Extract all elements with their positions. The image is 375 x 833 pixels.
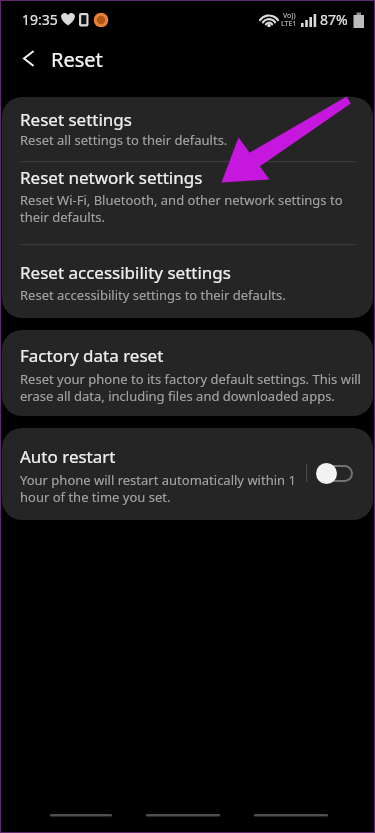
staticText: Reset all settings to their defaults.	[20, 131, 228, 149]
button[interactable]	[2, 97, 373, 161]
staticText: 87%	[320, 10, 348, 29]
staticText: Your phone will restart automatically wi…	[20, 471, 296, 506]
staticText: Reset network settings	[20, 166, 203, 189]
staticText: Reset settings	[20, 108, 132, 131]
button[interactable]: Factory data reset	[2, 330, 373, 416]
staticText: LTE1	[281, 19, 297, 29]
button[interactable]	[2, 244, 373, 318]
button[interactable]	[310, 458, 365, 500]
button[interactable]	[12, 44, 48, 74]
staticText: Reset accessibility settings	[20, 261, 231, 284]
staticText: Reset	[51, 46, 103, 73]
staticText: Reset Wi-Fi, Bluetooth, and other networ…	[20, 191, 343, 226]
staticText: Auto restart	[20, 445, 116, 468]
button[interactable]	[2, 161, 373, 244]
staticText: 19:35	[22, 10, 58, 29]
button[interactable]: Auto restart	[2, 428, 373, 520]
staticText: Vo))	[283, 11, 296, 21]
staticText: Reset your phone to its factory default …	[20, 370, 361, 405]
staticText: Factory data reset	[20, 344, 164, 367]
staticText: Reset accessibility settings to their de…	[20, 286, 286, 304]
